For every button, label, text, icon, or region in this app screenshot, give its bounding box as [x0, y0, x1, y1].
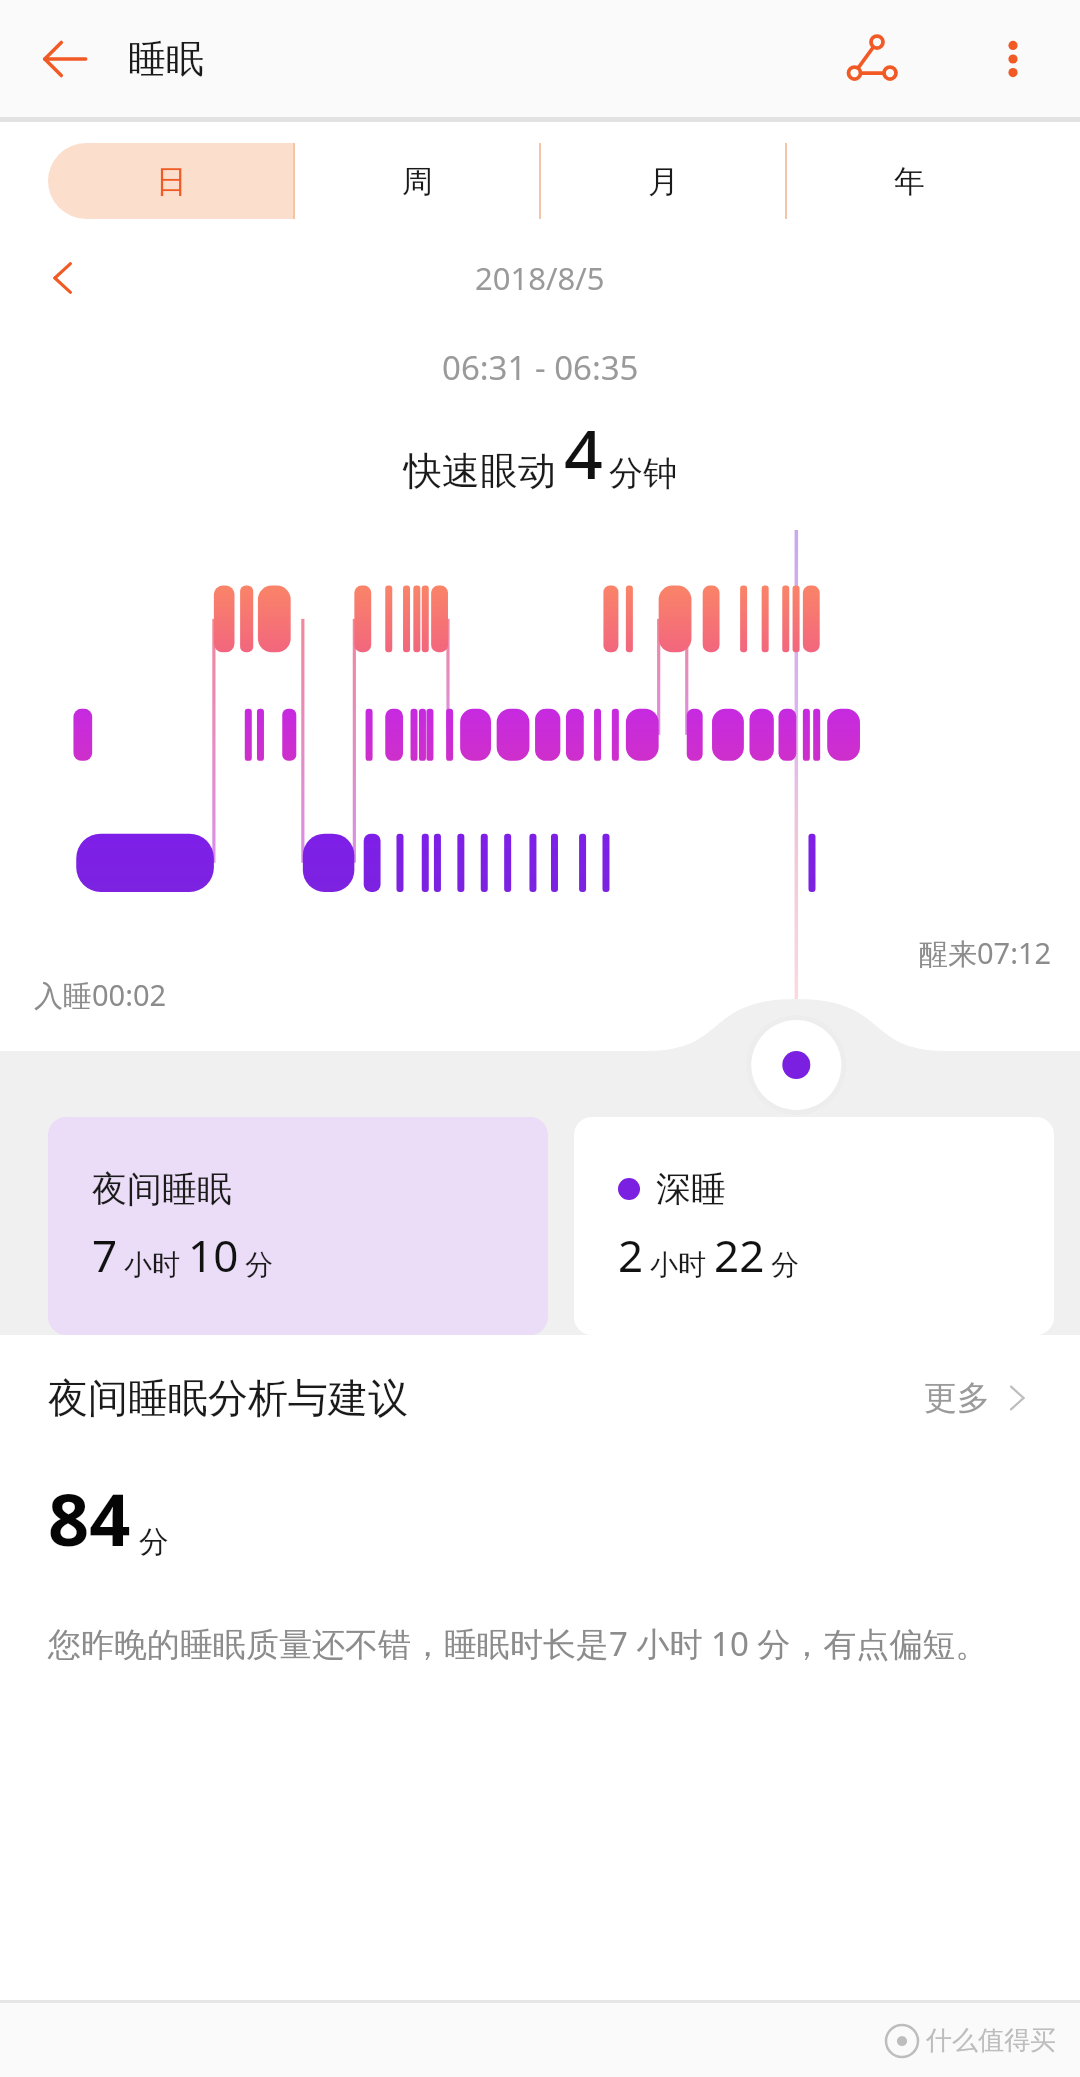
- staticText: 4: [564, 406, 603, 499]
- staticText: 醒来07:12: [919, 933, 1052, 973]
- staticText: 什么值得买: [926, 2024, 1056, 2057]
- staticText: 入睡00:02: [34, 975, 167, 1015]
- staticText: 睡眠: [128, 35, 204, 83]
- button[interactable]: 周: [294, 143, 540, 219]
- button[interactable]: 日: [48, 143, 294, 219]
- staticText: 7: [92, 1225, 118, 1285]
- staticText: 深睡: [656, 1167, 726, 1211]
- staticText: 快速眼动: [404, 447, 556, 495]
- staticText: 夜间睡眠: [92, 1167, 232, 1211]
- staticText: 月: [648, 162, 679, 201]
- staticText: 年: [894, 162, 925, 201]
- staticText: 22: [714, 1225, 765, 1285]
- button[interactable]: Share: [836, 22, 910, 96]
- staticText: 分: [139, 1523, 169, 1561]
- staticText: 小时: [650, 1247, 706, 1282]
- staticText: 分: [245, 1247, 273, 1282]
- button[interactable]: 月: [540, 143, 786, 219]
- staticText: 小时: [124, 1247, 180, 1282]
- staticText: 10: [188, 1225, 239, 1285]
- staticText: 84: [48, 1469, 131, 1567]
- staticText: 夜间睡眠分析与建议: [48, 1373, 408, 1423]
- button[interactable]: 更多: [924, 1377, 1032, 1419]
- staticText: 2: [618, 1225, 644, 1285]
- staticText: 分钟: [609, 452, 677, 495]
- staticText: 您昨晚的睡眠质量还不错，睡眠时长是7 小时 10 分，有点偏短。: [48, 1621, 989, 1666]
- button[interactable]: 年: [786, 143, 1032, 219]
- button[interactable]: 夜间睡眠: [48, 1117, 548, 1335]
- button[interactable]: More options: [976, 22, 1050, 96]
- staticText: 2018/8/5: [475, 257, 605, 299]
- staticText: 周: [402, 162, 433, 201]
- staticText: 日: [156, 162, 187, 201]
- button[interactable]: Previous day: [32, 247, 94, 309]
- staticText: 更多: [924, 1377, 990, 1419]
- button[interactable]: 深睡: [574, 1117, 1054, 1335]
- staticText: 06:31 - 06:35: [442, 345, 639, 390]
- button[interactable]: Back: [34, 28, 96, 90]
- staticText: 分: [771, 1247, 799, 1282]
